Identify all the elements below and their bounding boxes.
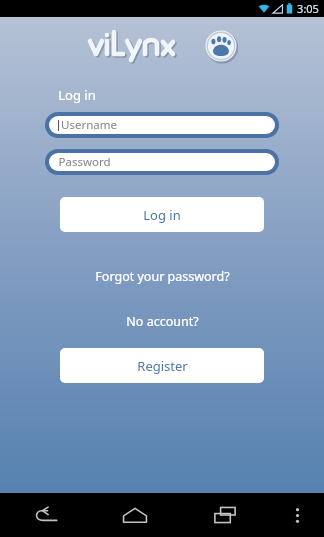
staticText: 3:05 — [297, 1, 319, 16]
staticText: Log in — [143, 206, 181, 224]
staticText: Register — [137, 357, 188, 375]
button[interactable]: Recent apps — [180, 493, 270, 537]
button[interactable]: Forgot your password? — [85, 265, 240, 288]
staticText: Log in — [58, 86, 96, 104]
button[interactable]: Username — [45, 112, 279, 138]
button[interactable]: Home — [90, 493, 180, 537]
button[interactable]: Log in — [60, 197, 264, 232]
button[interactable]: Register — [60, 348, 264, 383]
button[interactable]: Back — [0, 493, 90, 537]
staticText: Password — [58, 154, 111, 170]
staticText: Username — [61, 117, 117, 133]
button[interactable]: Password — [45, 149, 279, 175]
staticText: No account? — [126, 313, 199, 330]
button[interactable]: More options — [270, 493, 324, 537]
staticText: Forgot your password? — [95, 268, 230, 285]
